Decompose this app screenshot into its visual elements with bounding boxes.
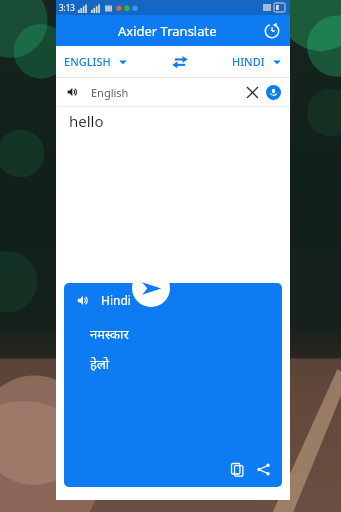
button[interactable]: Share	[256, 462, 271, 477]
button[interactable]: Speak English	[65, 85, 79, 99]
button[interactable]: Voice input	[266, 85, 281, 100]
staticText: hello	[69, 111, 104, 131]
button[interactable]: Speak Hindi	[75, 293, 90, 308]
button[interactable]: Clear	[242, 82, 262, 102]
staticText: नमस्कार	[90, 325, 129, 343]
button[interactable]: Copy	[230, 462, 245, 477]
button[interactable]: Speak Hindi	[64, 283, 282, 487]
button[interactable]: Translate	[132, 269, 170, 307]
staticText: Hindi	[101, 292, 131, 308]
staticText: HINDI	[232, 54, 265, 69]
staticText: हेलो	[90, 355, 110, 373]
staticText: English	[91, 85, 129, 100]
button[interactable]: HINDI	[232, 54, 282, 69]
staticText: Axider Translate	[118, 22, 217, 40]
staticText: 3:13	[59, 2, 75, 13]
button[interactable]: History	[261, 20, 283, 42]
button[interactable]: Swap languages	[169, 51, 191, 73]
button[interactable]: ENGLISH	[64, 54, 128, 69]
staticText: ENGLISH	[64, 54, 111, 69]
